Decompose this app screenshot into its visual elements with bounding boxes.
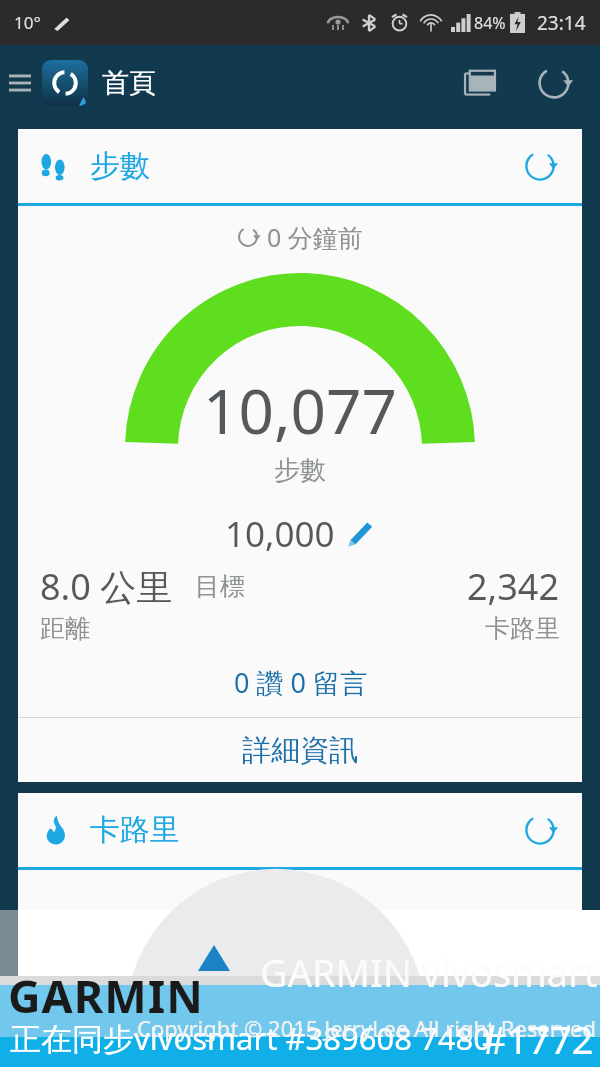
staticText: 84% [474, 12, 506, 34]
button[interactable]: 詳細資訊 [18, 718, 582, 782]
staticText: 步數 [90, 147, 150, 185]
staticText: 23:14 [537, 10, 586, 36]
button[interactable]: Edit goal [345, 519, 375, 549]
staticText: 10,000 [225, 510, 335, 558]
staticText: 8.0 公里 [40, 562, 173, 611]
button[interactable]: Refresh 步數 [518, 144, 562, 188]
staticText: Copyright © 2015 JerryLee All right Rese… [137, 1013, 596, 1043]
button[interactable]: 0 讚 0 留言 [18, 664, 582, 701]
staticText: #1772 [482, 1013, 594, 1065]
staticText: 0 分鐘前 [267, 220, 363, 254]
staticText: GARMIN vivosmart [260, 946, 598, 998]
button[interactable]: Refresh [530, 59, 578, 107]
staticText: 距離 [40, 613, 90, 644]
staticText: 目標 [195, 571, 245, 602]
staticText: 0 讚 0 留言 [234, 664, 367, 701]
staticText: 步數 [274, 454, 326, 487]
staticText: 詳細資訊 [242, 732, 358, 769]
button[interactable]: Menu [2, 65, 38, 101]
staticText: 正在同步vivosmart #389608 7480 [10, 1017, 491, 1059]
button[interactable]: Garmin Connect [42, 60, 88, 106]
staticText: 卡路里 [90, 811, 180, 849]
button[interactable]: Refresh 卡路里 [518, 808, 562, 852]
staticText: GARMIN [8, 965, 204, 1026]
staticText: 卡路里 [485, 613, 560, 644]
staticText: 10° [14, 11, 41, 34]
button[interactable]: Cards [456, 59, 504, 107]
staticText: 10,077 [203, 368, 397, 452]
staticText: 2,342 [467, 562, 560, 611]
staticText: 首頁 [102, 66, 156, 100]
